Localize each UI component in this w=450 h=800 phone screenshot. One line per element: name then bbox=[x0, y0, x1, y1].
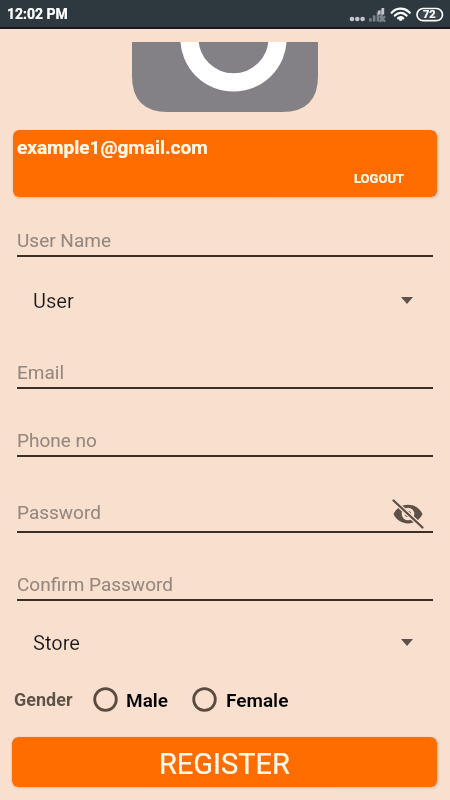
staticText: Female bbox=[226, 689, 289, 711]
button[interactable]: Female bbox=[192, 687, 289, 712]
staticText: Male bbox=[126, 689, 169, 711]
button[interactable]: Male bbox=[93, 687, 169, 712]
staticText: User bbox=[33, 289, 74, 312]
staticText: LOGOUT bbox=[354, 171, 405, 186]
button[interactable]: Store bbox=[0, 620, 450, 664]
button[interactable]: Password bbox=[0, 501, 450, 539]
staticText: Gender bbox=[14, 689, 73, 710]
button[interactable]: Show password bbox=[390, 496, 426, 532]
button[interactable]: Confirm Password bbox=[0, 573, 450, 607]
button[interactable]: Email bbox=[0, 361, 450, 395]
staticText: Confirm Password bbox=[17, 573, 173, 595]
staticText: Password bbox=[17, 501, 101, 523]
staticText: Email bbox=[17, 361, 65, 383]
button[interactable]: example1@gmail.com bbox=[13, 130, 437, 197]
staticText: Phone no bbox=[17, 429, 97, 451]
staticText: REGISTER bbox=[159, 747, 290, 781]
staticText: User Name bbox=[17, 229, 111, 251]
button[interactable]: User Name bbox=[0, 229, 450, 263]
staticText: Store bbox=[33, 631, 80, 654]
button[interactable]: LOGOUT bbox=[354, 171, 405, 186]
staticText: 72 bbox=[423, 8, 436, 21]
button[interactable]: User bbox=[0, 278, 450, 322]
staticText: 12:02 PM bbox=[7, 6, 68, 22]
button[interactable]: Phone no bbox=[0, 429, 450, 463]
button[interactable]: REGISTER bbox=[12, 737, 437, 787]
staticText: example1@gmail.com bbox=[17, 136, 208, 158]
